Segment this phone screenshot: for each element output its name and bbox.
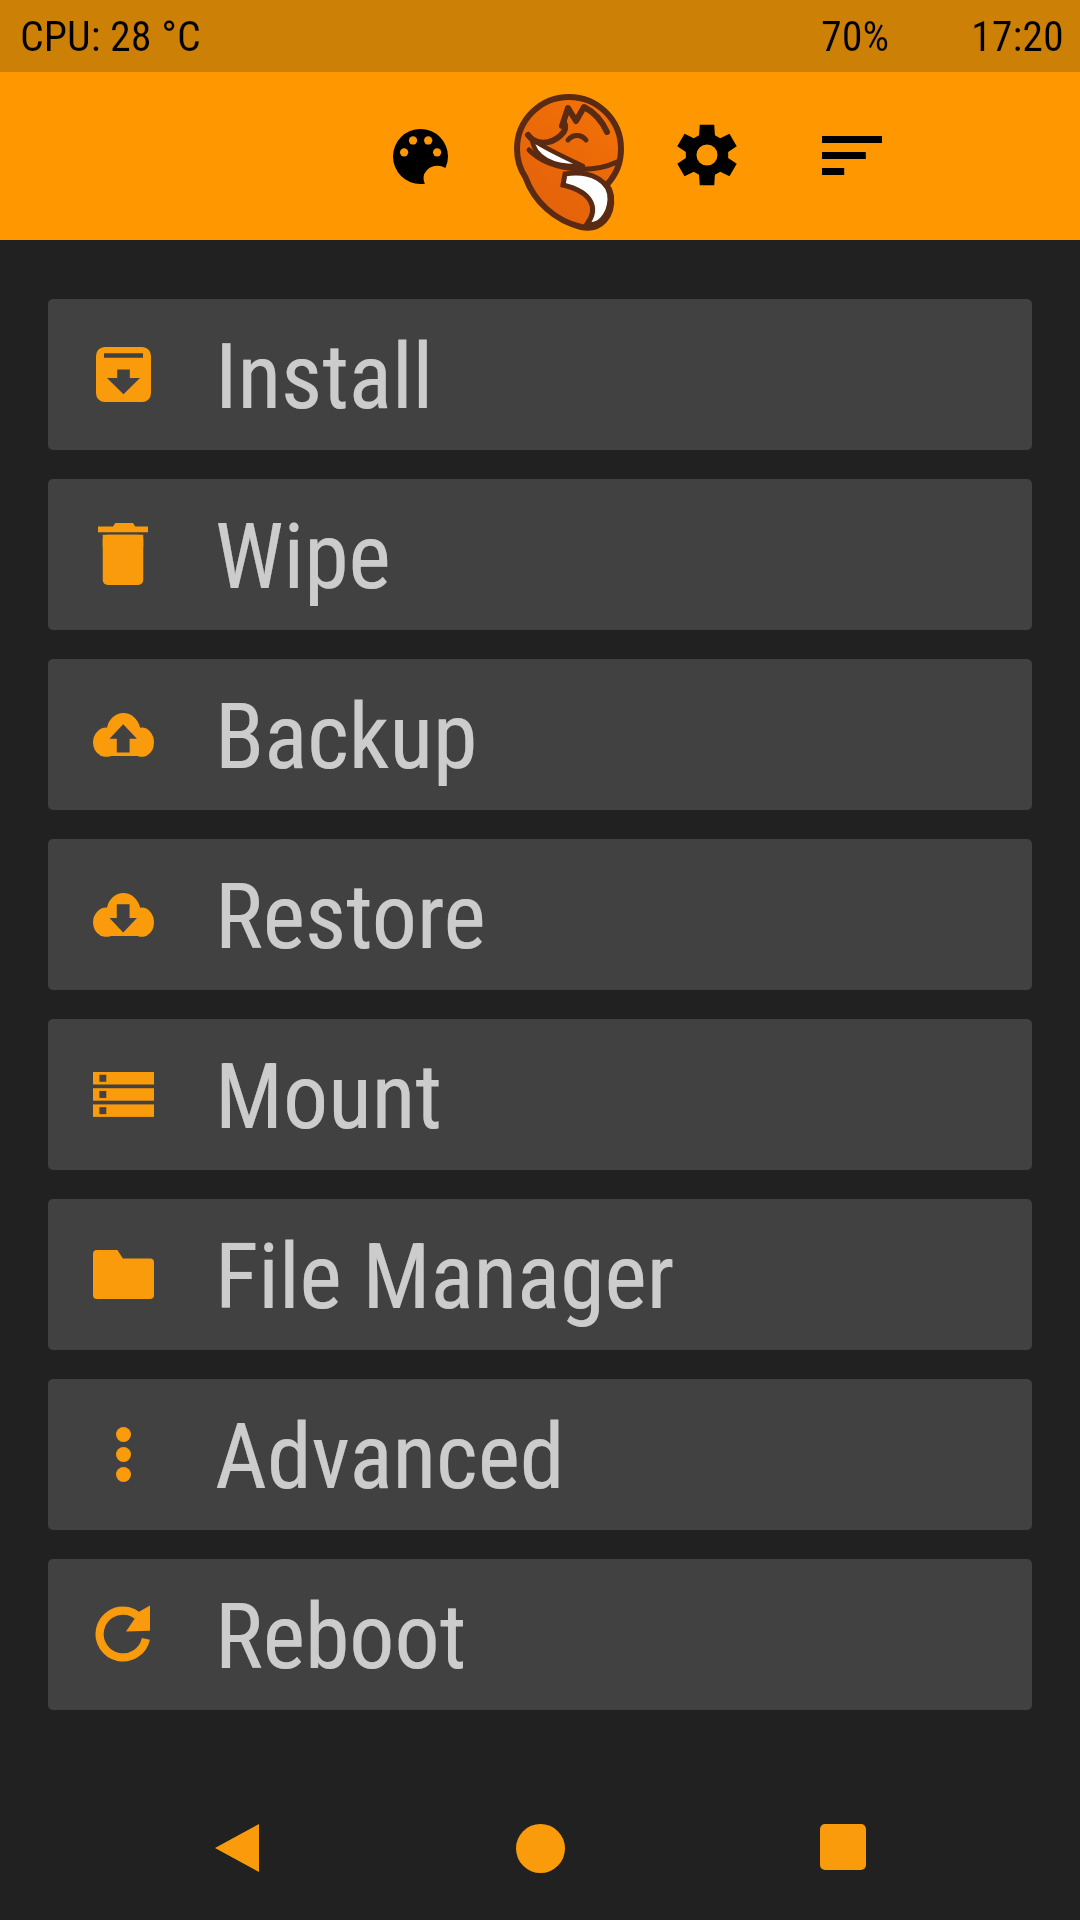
staticText: Reboot — [215, 1585, 467, 1690]
staticText: Advanced — [215, 1405, 565, 1510]
staticText: Install — [215, 325, 434, 430]
button[interactable]: Settings — [655, 103, 759, 207]
button[interactable]: Log — [800, 103, 904, 207]
button[interactable]: Advanced — [48, 1379, 1032, 1530]
staticText: Backup — [215, 685, 478, 790]
button[interactable]: Themes — [368, 104, 472, 208]
button[interactable]: Reboot — [48, 1559, 1032, 1710]
staticText: 17:20 — [971, 12, 1064, 61]
button[interactable]: OrangeFox — [511, 96, 635, 238]
staticText: Restore — [215, 865, 486, 970]
button[interactable]: Backup — [48, 659, 1032, 810]
button[interactable]: Restore — [48, 839, 1032, 990]
staticText: File Manager — [215, 1225, 675, 1330]
button[interactable]: Recents — [783, 1787, 903, 1907]
staticText: 70% — [821, 12, 890, 61]
button[interactable]: Back — [177, 1788, 297, 1908]
button[interactable]: Wipe — [48, 479, 1032, 630]
button[interactable]: Install — [48, 299, 1032, 450]
staticText: Mount — [215, 1045, 442, 1150]
button[interactable]: File Manager — [48, 1199, 1032, 1350]
button[interactable]: Mount — [48, 1019, 1032, 1170]
button[interactable]: Home — [480, 1788, 600, 1908]
staticText: CPU: 28 °C — [20, 12, 201, 61]
staticText: Wipe — [215, 505, 391, 610]
